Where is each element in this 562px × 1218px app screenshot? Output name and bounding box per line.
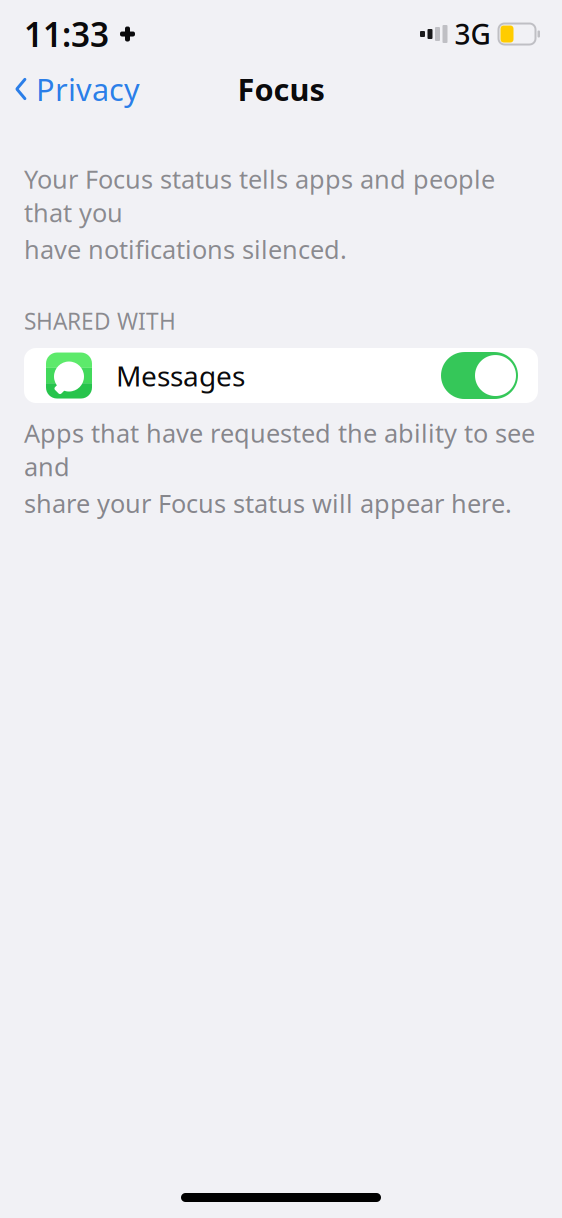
staticText: SHARED WITH (24, 306, 176, 336)
staticText: Focus (237, 69, 324, 109)
staticText: Apps that have requested the ability to … (24, 416, 535, 483)
staticText: 11:33 (24, 12, 109, 56)
staticText: 3G (454, 15, 490, 53)
staticText: share your Focus status will appear here… (24, 486, 512, 520)
staticText: Your Focus status tells apps and people … (24, 162, 495, 229)
button[interactable]: Messages (24, 348, 538, 403)
staticText: Messages (116, 357, 245, 394)
staticText: have notifications silenced. (24, 232, 347, 266)
staticText: Privacy (36, 69, 140, 109)
button[interactable]: Privacy (0, 61, 140, 117)
